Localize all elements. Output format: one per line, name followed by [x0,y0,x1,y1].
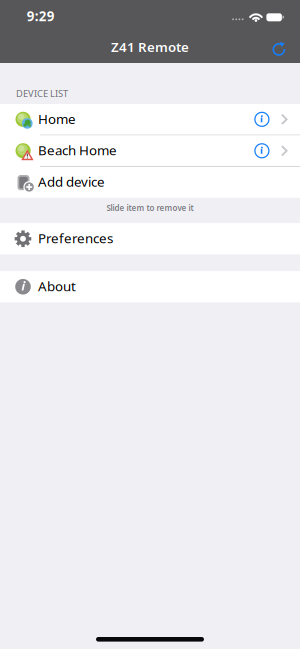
staticText: Add device [38,173,105,190]
staticText: Beach Home [38,141,117,159]
button[interactable]: Preferences [0,223,300,254]
staticText: DEVICE LIST [16,87,68,99]
button[interactable]: About [0,271,300,302]
staticText: Z41 Remote [111,38,189,56]
button[interactable]: Home [0,104,300,135]
button[interactable]: Beach Home [0,135,300,166]
staticText: Preferences [38,229,113,247]
button[interactable]: Info [255,143,269,158]
staticText: About [38,277,76,295]
button[interactable]: Info [255,112,269,127]
staticText: 9:29 [27,7,55,25]
button[interactable]: Add device [0,167,300,197]
staticText: Home [38,110,76,128]
staticText: Slide item to remove it [106,203,193,213]
button[interactable]: Refresh [272,40,286,55]
